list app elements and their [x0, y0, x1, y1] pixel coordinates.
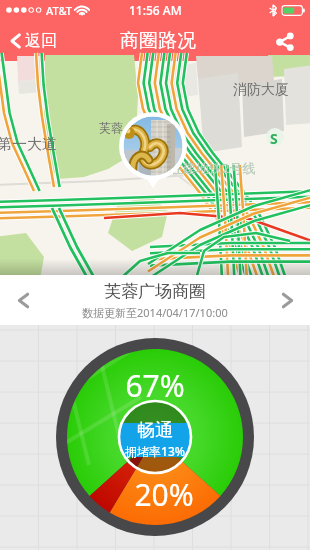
button[interactable]: Share: [268, 24, 302, 58]
staticText: 11:56 AM: [129, 2, 182, 18]
staticText: 数据更新至2014/04/17/10:00: [82, 305, 228, 320]
button[interactable]: Next: [264, 275, 310, 325]
staticText: 第一大道: [0, 135, 57, 154]
staticText: AT&T: [46, 3, 73, 18]
staticText: 芙蓉: [99, 120, 123, 135]
staticText: 20%: [134, 474, 194, 515]
button[interactable]: 返回: [6, 26, 61, 56]
button[interactable]: Previous: [0, 275, 46, 325]
staticText: 芙蓉广场商圈: [104, 281, 206, 302]
staticText: 商圈路况: [120, 29, 196, 53]
staticText: 畅通: [137, 419, 173, 442]
staticText: 消防大厦: [233, 81, 289, 99]
staticText: 拥堵率13%: [125, 443, 185, 459]
staticText: 在建地铁2号线: [170, 159, 256, 177]
staticText: 返回: [25, 31, 57, 51]
staticText: S: [270, 129, 278, 148]
staticText: 67%: [125, 365, 185, 406]
